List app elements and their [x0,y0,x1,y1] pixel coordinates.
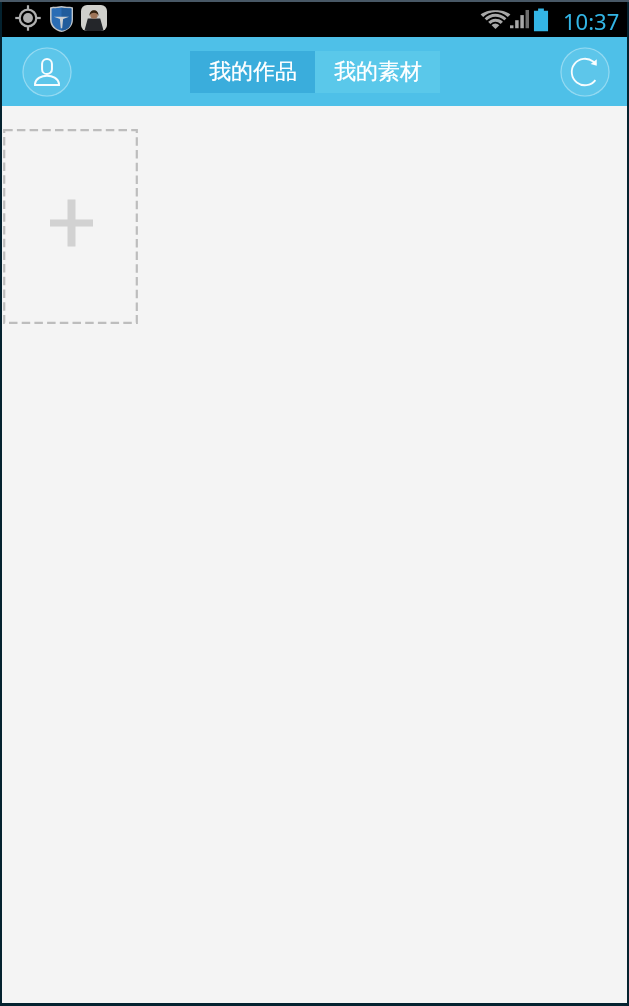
staticText: 我的素材 [334,58,422,86]
staticText: 我的作品 [209,58,297,86]
button[interactable]: 我的作品 [190,51,315,93]
button[interactable]: Add new work [3,129,138,324]
staticText: 10:37 [563,6,620,36]
button[interactable]: Refresh [560,47,610,97]
button[interactable]: Profile [22,47,72,97]
button[interactable]: 我的素材 [315,51,440,93]
